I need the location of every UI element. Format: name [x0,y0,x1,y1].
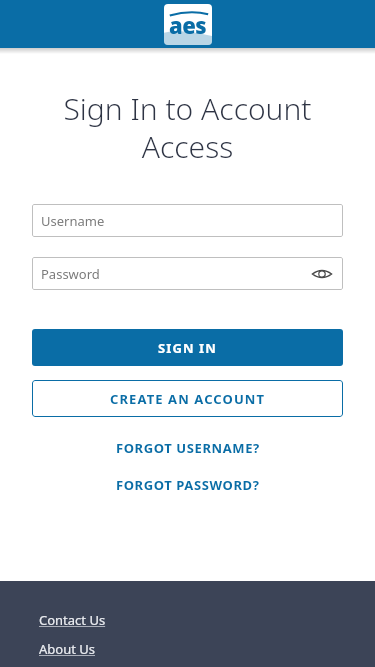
button[interactable]: FORGOT USERNAME? [0,435,375,461]
staticText: CREATE AN ACCOUNT [110,390,266,408]
button[interactable]: Show password [310,262,334,286]
button[interactable]: Contact Us [39,611,106,629]
staticText: Contact Us [39,611,106,629]
staticText: aes [169,10,207,40]
button[interactable]: CREATE AN ACCOUNT [32,380,343,417]
staticText: About Us [39,640,96,658]
staticText: Password [41,265,310,283]
button[interactable]: SIGN IN [32,329,343,366]
staticText: Username [41,212,334,230]
staticText: FORGOT USERNAME? [116,439,260,457]
staticText: Sign In to Account Access [22,88,353,167]
staticText: FORGOT PASSWORD? [116,476,260,494]
button[interactable]: FORGOT PASSWORD? [0,472,375,498]
other: AES logo [164,4,212,45]
button[interactable]: Username [32,204,343,237]
staticText: SIGN IN [158,339,217,357]
button[interactable]: About Us [39,640,96,658]
button[interactable]: Password [32,257,343,290]
